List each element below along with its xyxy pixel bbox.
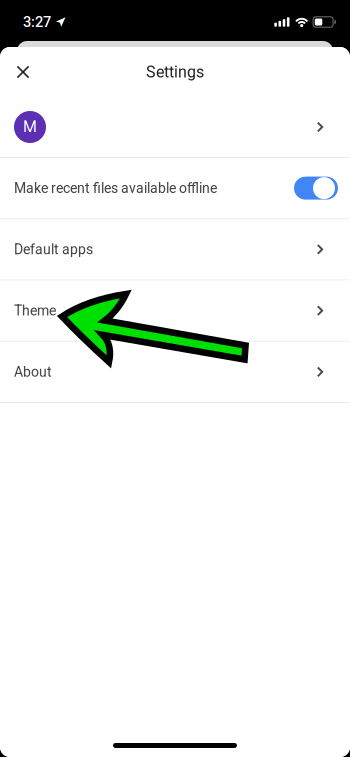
button[interactable]: Theme <box>0 280 350 341</box>
staticText: 3:27 <box>23 13 51 31</box>
staticText: Settings <box>146 63 204 81</box>
staticText: About <box>14 364 52 380</box>
staticText: Default apps <box>14 241 93 258</box>
button[interactable]: Close <box>0 49 46 95</box>
button[interactable]: Default apps <box>0 219 350 279</box>
staticText: Make recent files available offline <box>14 180 217 196</box>
button[interactable]: Make recent files available offline <box>0 158 350 218</box>
staticText: Theme <box>14 302 56 319</box>
button[interactable]: About <box>0 342 350 402</box>
staticText: M <box>23 118 37 136</box>
button[interactable]: M <box>0 97 350 157</box>
